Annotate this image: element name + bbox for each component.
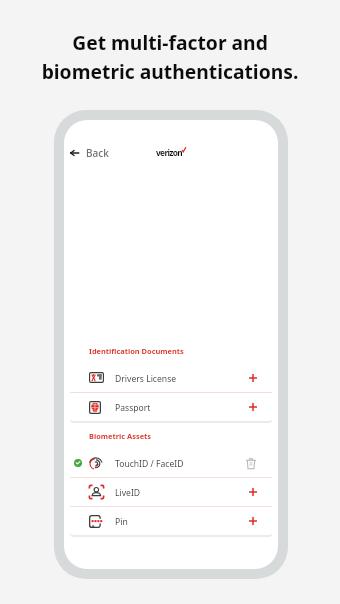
button[interactable]: Delete: [244, 456, 258, 470]
staticText: Back: [86, 146, 109, 160]
staticText: Passport: [115, 402, 151, 414]
button[interactable]: Passport: [70, 393, 272, 421]
button[interactable]: Pin: [70, 507, 272, 535]
staticText: Drivers License: [115, 373, 177, 385]
staticText: Identification Documents: [89, 346, 184, 356]
button[interactable]: TouchID / FaceID: [70, 448, 272, 477]
button[interactable]: Back: [66, 141, 113, 165]
button[interactable]: Add: [246, 371, 260, 385]
staticText: LiveID: [115, 487, 141, 499]
staticText: Biometric Assets: [89, 431, 152, 441]
staticText: Get multi-factor and biometric authentic…: [0, 29, 340, 84]
button[interactable]: LiveID: [70, 478, 272, 506]
button[interactable]: Drivers License: [70, 363, 272, 392]
staticText: Pin: [115, 516, 128, 528]
button[interactable]: Add: [246, 400, 260, 414]
button[interactable]: Add: [246, 514, 260, 528]
button[interactable]: Add: [246, 485, 260, 499]
staticText: verizon: [156, 147, 182, 158]
staticText: TouchID / FaceID: [115, 458, 184, 470]
